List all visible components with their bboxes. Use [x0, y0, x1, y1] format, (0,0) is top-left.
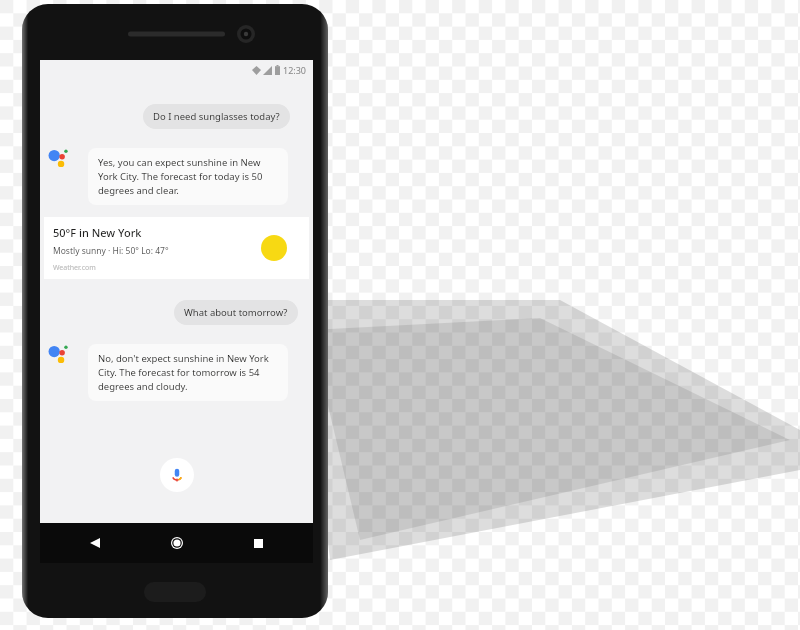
button[interactable]: 50°F in New York: [44, 217, 309, 279]
button[interactable]: Recent apps: [247, 532, 269, 554]
button[interactable]: Back: [84, 532, 106, 554]
button[interactable]: Voice input: [160, 458, 194, 492]
staticText: 12:30: [283, 64, 307, 76]
staticText: Mostly sunny · Hi: 50° Lo: 47°: [53, 245, 169, 257]
button[interactable]: No, don't expect sunshine in New York Ci…: [88, 344, 288, 401]
button[interactable]: What about tomorrow?: [174, 300, 298, 325]
button[interactable]: Home: [166, 532, 188, 554]
staticText: Weather.com: [53, 263, 96, 273]
staticText: Yes, you can expect sunshine in New York…: [98, 156, 278, 197]
staticText: What about tomorrow?: [184, 306, 288, 319]
staticText: Do I need sunglasses today?: [153, 110, 280, 123]
staticText: 50°F in New York: [53, 225, 142, 240]
button[interactable]: Do I need sunglasses today?: [143, 104, 290, 129]
button[interactable]: Yes, you can expect sunshine in New York…: [88, 148, 288, 205]
staticText: No, don't expect sunshine in New York Ci…: [98, 352, 278, 393]
